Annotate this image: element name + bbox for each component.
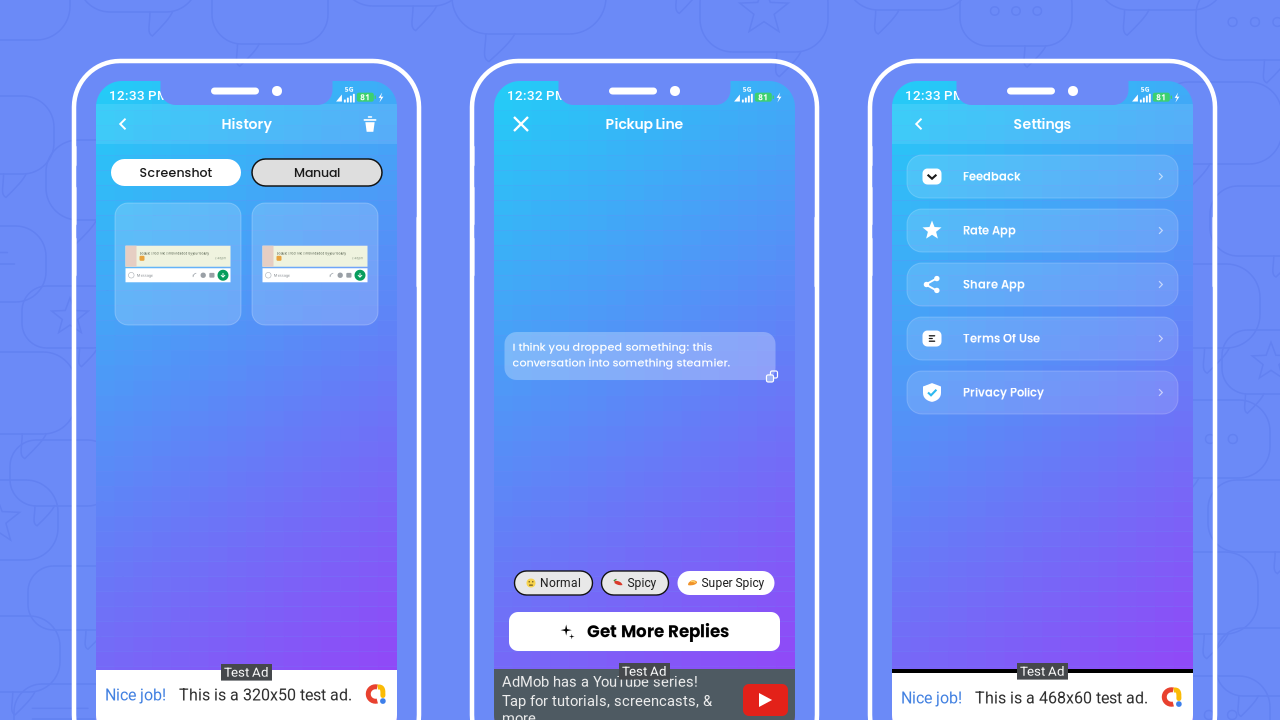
button[interactable]: I think you dropped something: this conv…	[509, 335, 780, 383]
staticText: Manual	[294, 164, 340, 181]
button[interactable]: Spicy	[601, 571, 668, 595]
staticText: 81	[1156, 92, 1166, 102]
button[interactable]: Rate App	[907, 209, 1178, 252]
staticText: Message	[274, 273, 290, 278]
button[interactable]: Because I feel like I'm blindsided by yo…	[252, 203, 378, 325]
staticText: 5G	[1141, 85, 1150, 93]
staticText: Spicy	[627, 576, 656, 590]
staticText: 81	[360, 92, 370, 102]
staticText: Because I feel like I'm blindsided by yo…	[139, 252, 208, 255]
staticText: Message	[137, 273, 153, 278]
staticText: Get More Replies	[587, 620, 729, 643]
staticText: Nice job!	[901, 689, 962, 707]
button[interactable]: Nice job!	[892, 669, 1193, 720]
staticText: Share App	[963, 276, 1025, 293]
staticText: Privacy Policy	[963, 384, 1044, 401]
button[interactable]: Manual	[252, 159, 382, 186]
button[interactable]: Share App	[907, 263, 1178, 306]
staticText: Terms Of Use	[963, 330, 1040, 347]
staticText: Settings	[1013, 114, 1071, 134]
button[interactable]: Because I feel like I'm blindsided by yo…	[115, 203, 241, 325]
staticText: Test Ad	[622, 663, 667, 679]
staticText: Tap for tutorials, screencasts, & more.	[502, 692, 712, 720]
staticText: This is a 468x60 test ad.	[975, 689, 1148, 707]
staticText: 5G	[743, 85, 752, 93]
staticText: Pickup Line	[605, 114, 683, 134]
staticText: 81	[758, 92, 768, 102]
staticText: 6:48pm	[351, 256, 362, 260]
button[interactable]: Delete all	[354, 108, 386, 140]
staticText: Rate App	[963, 222, 1016, 239]
staticText: Screenshot	[139, 164, 212, 181]
staticText: 12:33 PM | 4	[109, 88, 186, 103]
button[interactable]: Get More Replies	[509, 612, 780, 651]
button[interactable]: Normal	[514, 571, 592, 595]
staticText: I think you dropped something: this conv…	[512, 339, 730, 370]
button[interactable]: Back	[903, 108, 935, 140]
button[interactable]: Screenshot	[111, 159, 241, 186]
staticText: Test Ad	[224, 664, 269, 680]
staticText: History	[221, 114, 271, 134]
button[interactable]: Privacy Policy	[907, 371, 1178, 414]
button[interactable]: Back	[107, 108, 139, 140]
staticText: 5G	[345, 85, 354, 93]
button[interactable]: Nice job!	[96, 670, 397, 720]
button[interactable]: Terms Of Use	[907, 317, 1178, 360]
staticText: 12:32 PM | 5	[507, 88, 584, 103]
button[interactable]: Super Spicy	[677, 571, 774, 595]
button[interactable]: Close	[505, 108, 537, 140]
staticText: Super Spicy	[701, 576, 764, 590]
staticText: AdMob has a YouTube series!	[502, 673, 698, 690]
staticText: This is a 320x50 test ad.	[179, 686, 352, 704]
button[interactable]: AdMob has a YouTube series!	[494, 669, 795, 720]
staticText: 6:48pm	[214, 256, 225, 260]
staticText: Normal	[540, 576, 581, 590]
staticText: Feedback	[963, 168, 1021, 185]
staticText: Test Ad	[1020, 663, 1065, 679]
staticText: 12:33 PM | 2	[905, 88, 982, 103]
button[interactable]: Feedback	[907, 155, 1178, 198]
staticText: Nice job!	[105, 686, 166, 704]
staticText: Because I feel like I'm blindsided by yo…	[276, 252, 345, 255]
